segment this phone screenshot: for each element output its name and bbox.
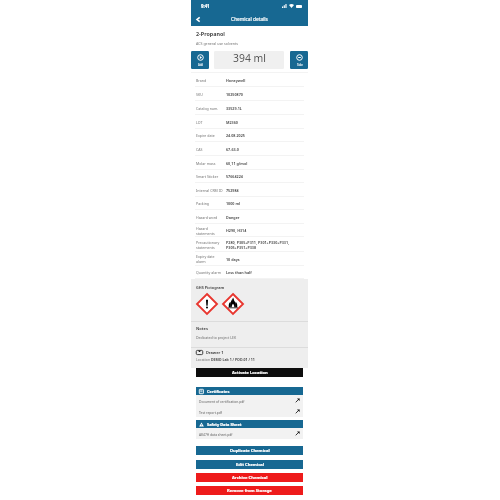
staticText: CAS <box>196 147 203 152</box>
staticText: H290, H314 <box>226 228 247 233</box>
staticText: Honeywell <box>226 78 246 83</box>
button[interactable]: Remove from Storage <box>196 486 303 495</box>
staticText: 752984 <box>226 188 239 193</box>
staticText: Take <box>297 63 303 67</box>
button[interactable]: Duplicate Chemical <box>196 446 303 455</box>
staticText: SKU <box>196 92 203 97</box>
staticText: M2360 <box>226 120 238 125</box>
staticText: Edit Chemical <box>236 462 264 468</box>
button[interactable]: Add <box>191 51 209 69</box>
button[interactable]: Certificates <box>196 387 303 395</box>
staticText: Dedicated to project LEK <box>196 335 237 340</box>
button[interactable]: Test report.pdf <box>199 406 300 417</box>
button[interactable]: Activate Location <box>196 368 303 377</box>
staticText: Packing <box>196 201 210 206</box>
staticText: Duplicate Chemical <box>230 448 270 454</box>
staticText: Location <box>196 357 211 362</box>
staticText: Danger <box>226 215 240 220</box>
staticText: 10 days <box>226 257 240 262</box>
staticText: A847H data sheet.pdf <box>199 432 295 436</box>
staticText: Chemical details <box>191 16 308 23</box>
button[interactable]: Back <box>192 13 204 25</box>
staticText: P280, P305+P311, P301+P330+P331, <box>226 240 290 245</box>
staticText: statements <box>196 245 215 250</box>
staticText: Safety Data Sheet <box>207 422 242 427</box>
staticText: 60,11 g/mol <box>226 161 248 166</box>
staticText: Smart Sticker <box>196 174 219 179</box>
staticText: GHS Pictogram <box>196 285 225 290</box>
staticText: 57664224 <box>226 174 243 179</box>
staticText: Activate Location <box>232 370 268 376</box>
staticText: Remove from Storage <box>227 488 272 494</box>
staticText: 9:41 <box>201 3 210 9</box>
staticText: 394 ml <box>233 51 266 65</box>
button[interactable]: Document of certification.pdf <box>199 395 300 406</box>
staticText: statements <box>196 231 215 236</box>
staticText: Catalog num. <box>196 106 219 111</box>
staticText: Expiry date <box>196 254 215 259</box>
staticText: alarm <box>196 259 206 264</box>
staticText: Add <box>198 63 204 67</box>
staticText: LOT <box>196 120 203 125</box>
staticText: 1000 ml <box>226 201 241 206</box>
button[interactable]: Take <box>290 51 308 69</box>
button[interactable]: Archive Chemical <box>196 473 303 482</box>
staticText: Internal CRM ID <box>196 188 223 193</box>
staticText: Less than half <box>226 270 252 275</box>
staticText: Molar mass <box>196 161 216 166</box>
staticText: Test report.pdf <box>199 410 295 414</box>
staticText: Archive Chemical <box>232 475 268 481</box>
staticText: 33529-1L <box>226 106 242 111</box>
button[interactable]: A847H data sheet.pdf <box>199 428 300 439</box>
staticText: Hazard <box>196 226 208 231</box>
staticText: Quantity alarm <box>196 270 222 275</box>
staticText: Hazard word <box>196 215 218 220</box>
staticText: Document of certification.pdf <box>199 399 295 403</box>
staticText: DEMO Lab 1 / POD-01 / 11 <box>211 357 255 362</box>
staticText: Notes <box>196 326 208 331</box>
staticText: ACS general use solvents <box>196 41 238 46</box>
button[interactable]: Edit Chemical <box>196 460 303 469</box>
staticText: Expire date <box>196 133 215 138</box>
staticText: Precautionary <box>196 240 220 245</box>
staticText: 67-63-0 <box>226 147 239 152</box>
staticText: Drawer 1 <box>206 350 224 355</box>
staticText: P305+P351+P338 <box>226 245 257 250</box>
staticText: 24.08.2025 <box>226 133 245 138</box>
staticText: 10250870 <box>226 92 243 97</box>
staticText: Brand <box>196 78 207 83</box>
staticText: Certificates <box>207 389 230 394</box>
staticText: 2-Propanol <box>196 30 225 37</box>
button[interactable]: Safety Data Sheet <box>196 420 303 428</box>
